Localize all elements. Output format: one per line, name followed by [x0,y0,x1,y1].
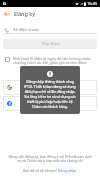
button[interactable]: Back [0,7,13,20]
staticText: Đăng nhập [58,168,77,173]
button[interactable]: Đăng nhập với Facebook [3,96,97,111]
button[interactable]: Tiếp theo [3,39,97,49]
button[interactable]: Bạn đã có tài khoản? [23,168,77,173]
staticText: Đăng nhập không thành công (F13). Thiết … [24,79,76,109]
staticText: Số điện thoại [13,27,39,33]
button[interactable]: Đăng nhập với Google [3,80,97,95]
staticText: Tiếp theo [41,41,60,47]
staticText: Bạn đã có tài khoản? [23,168,58,173]
staticText: G [3,1,7,6]
button[interactable]: Đăng nhập không thành công (F13). Thiết … [20,66,80,114]
staticText: Kích hoạt Ví điện tử ngay để tận hưởng n… [13,56,97,65]
staticText: 16:05 [87,1,98,6]
staticText: Đăng ký [14,10,36,17]
staticText: Bằng việc đăng ký, bạn đồng ý với Điều k… [8,154,92,163]
staticText: f [9,101,11,106]
button[interactable]: Kích hoạt Ví điện tử [5,57,10,62]
